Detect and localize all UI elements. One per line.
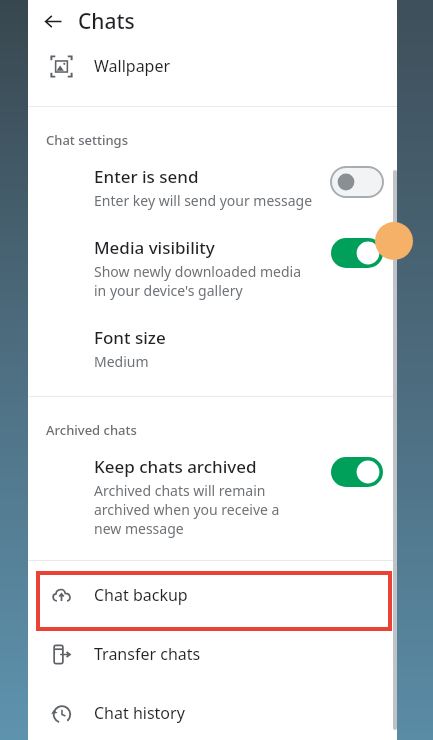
staticText: Medium — [94, 352, 149, 371]
button[interactable] — [331, 457, 383, 487]
other: Wallpaper — [50, 55, 73, 78]
other: Chat history — [50, 702, 73, 725]
button[interactable]: Back — [28, 0, 78, 42]
other: Chat backup — [50, 584, 73, 607]
staticText: Archived chats will remain archived when… — [94, 481, 280, 538]
staticText: Show newly downloaded media in your devi… — [94, 262, 302, 300]
staticText: Chats — [78, 7, 135, 36]
staticText: Transfer chats — [94, 643, 201, 665]
staticText: Chat history — [94, 702, 185, 724]
staticText: Archived chats — [46, 421, 137, 439]
button[interactable]: Keep chats archived — [28, 455, 397, 538]
button[interactable]: Enter is send — [28, 165, 397, 210]
staticText: Enter is send — [94, 165, 199, 188]
button[interactable] — [331, 167, 383, 197]
staticText: Keep chats archived — [94, 455, 257, 478]
other: Transfer chats — [50, 643, 73, 666]
button[interactable]: Media visibility — [28, 236, 397, 300]
staticText: Chat settings — [46, 131, 128, 149]
staticText: Wallpaper — [94, 55, 171, 77]
button[interactable]: Wallpaper — [28, 42, 397, 90]
staticText: Media visibility — [94, 236, 215, 259]
button[interactable]: Transfer chats — [28, 631, 397, 677]
staticText: Enter key will send your message — [94, 191, 313, 210]
staticText: Font size — [94, 326, 166, 349]
button[interactable]: Font size — [28, 326, 397, 371]
button[interactable] — [331, 238, 383, 268]
button[interactable]: Chat backup — [28, 572, 397, 618]
button[interactable]: Chat history — [28, 690, 397, 736]
staticText: Chat backup — [94, 584, 188, 606]
